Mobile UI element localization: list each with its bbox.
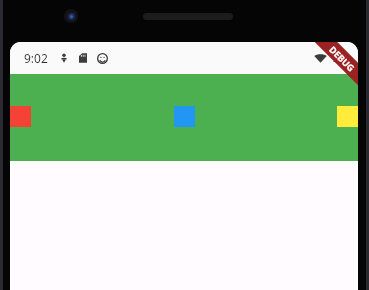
staticText: DEBUG: [327, 43, 358, 74]
staticText: 9:02: [24, 50, 48, 66]
